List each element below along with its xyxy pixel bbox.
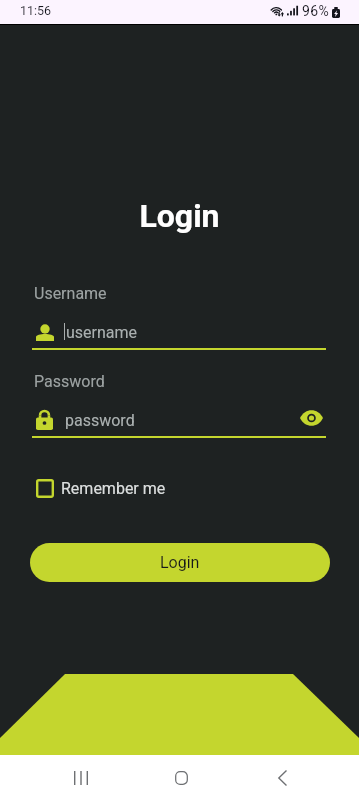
button[interactable]: Login xyxy=(30,543,330,582)
staticText: 11:56 xyxy=(20,3,52,18)
staticText: Username xyxy=(34,284,107,303)
button[interactable]: username xyxy=(32,322,326,344)
button[interactable]: Show password xyxy=(295,406,327,430)
button[interactable]: Back xyxy=(258,762,306,794)
button[interactable]: Remember me xyxy=(36,478,166,498)
staticText: 96% xyxy=(302,3,330,19)
staticText: Login xyxy=(0,197,359,235)
staticText: Login xyxy=(160,553,200,572)
button[interactable]: password xyxy=(65,411,135,430)
staticText: Remember me xyxy=(61,479,166,498)
staticText: username xyxy=(66,323,138,342)
staticText: Password xyxy=(34,372,105,391)
button[interactable]: Home xyxy=(157,762,205,794)
button[interactable]: Recent apps xyxy=(57,762,105,794)
